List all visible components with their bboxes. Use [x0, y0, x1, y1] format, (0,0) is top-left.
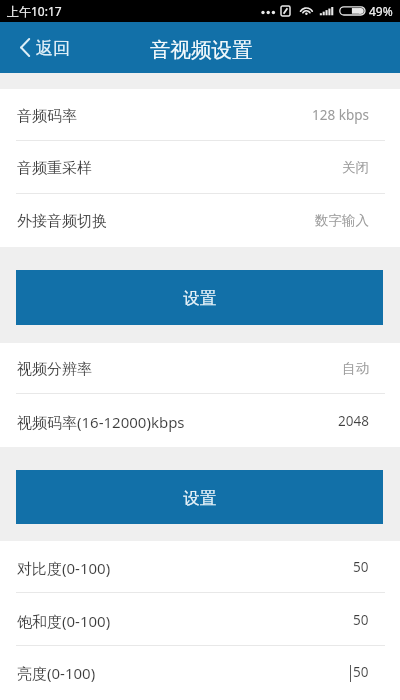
- button[interactable]: 对比度(0-100): [0, 541, 400, 593]
- staticText: 对比度(0-100): [17, 558, 111, 578]
- staticText: 音视频设置: [150, 37, 253, 63]
- staticText: 50: [353, 611, 369, 629]
- staticText: 自动: [342, 360, 369, 377]
- staticText: 外接音频切换: [17, 212, 107, 231]
- staticText: 数字输入: [315, 212, 369, 229]
- staticText: 上午10:17: [7, 3, 62, 19]
- button[interactable]: 视频码率(16-12000)kbps: [0, 394, 400, 447]
- staticText: 设置: [183, 288, 216, 309]
- staticText: 50: [353, 663, 369, 681]
- staticText: 50: [353, 558, 369, 576]
- staticText: 关闭: [342, 159, 369, 176]
- staticText: 亮度(0-100): [17, 663, 96, 683]
- staticText: 视频分辨率: [17, 360, 92, 379]
- staticText: 音频重采样: [17, 159, 92, 178]
- staticText: 设置: [183, 488, 216, 509]
- staticText: 饱和度(0-100): [17, 611, 111, 631]
- staticText: 49%: [369, 3, 393, 19]
- staticText: 2048: [338, 412, 369, 430]
- staticText: 返回: [36, 38, 70, 59]
- button[interactable]: 饱和度(0-100): [0, 593, 400, 646]
- button[interactable]: 设置: [16, 270, 383, 325]
- button[interactable]: 音频码率: [0, 89, 400, 141]
- staticText: 音频码率: [17, 107, 77, 126]
- button[interactable]: 外接音频切换: [0, 194, 400, 247]
- staticText: 视频码率(16-12000)kbps: [17, 412, 185, 432]
- button[interactable]: 设置: [16, 470, 383, 524]
- staticText: 128 kbps: [312, 106, 369, 124]
- button[interactable]: 亮度(0-100): [0, 646, 400, 698]
- button[interactable]: 视频分辨率: [0, 343, 400, 394]
- button[interactable]: 返回: [0, 27, 84, 68]
- button[interactable]: 音频重采样: [0, 141, 400, 194]
